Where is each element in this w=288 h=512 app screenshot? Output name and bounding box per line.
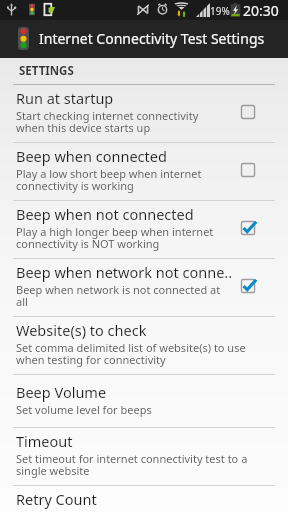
- button[interactable]: Beep when not connected: [0, 201, 288, 259]
- staticText: Beep when network not conne..: [16, 262, 233, 282]
- button[interactable]: Beep when connected: [0, 143, 288, 201]
- staticText: Beep when network is not connected at al…: [16, 282, 221, 309]
- staticText: Beep Volume: [16, 382, 107, 402]
- button[interactable]: Website(s) to check: [0, 317, 288, 375]
- staticText: Website(s) to check: [16, 320, 147, 340]
- staticText: Run at startup: [16, 88, 114, 108]
- staticText: SETTINGS: [19, 63, 74, 79]
- staticText: Internet Connectivity Test Settings: [39, 29, 265, 48]
- staticText: Play a low short beep when internet conn…: [16, 166, 202, 193]
- staticText: 20:30: [243, 1, 279, 20]
- staticText: Set comma delimited list of website(s) t…: [16, 340, 246, 367]
- button[interactable]: Beep when network not conne..: [0, 259, 288, 317]
- staticText: Beep when not connected: [16, 204, 194, 224]
- button[interactable]: Beep Volume: [0, 375, 288, 428]
- staticText: Play a high longer beep when internet co…: [16, 224, 214, 251]
- staticText: Set volume level for beeps: [16, 402, 152, 417]
- staticText: Beep when connected: [16, 146, 167, 166]
- button[interactable]: Timeout: [0, 428, 288, 486]
- staticText: Set timeout for internet connectivity te…: [16, 451, 248, 478]
- staticText: 19%: [210, 4, 230, 18]
- staticText: Timeout: [16, 431, 73, 451]
- button[interactable]: Retry Count: [0, 486, 288, 512]
- staticText: Retry Count: [16, 489, 97, 509]
- button[interactable]: Run at startup: [0, 85, 288, 143]
- staticText: Start checking internet connectivity whe…: [16, 108, 199, 135]
- other: App icon: [18, 27, 29, 50]
